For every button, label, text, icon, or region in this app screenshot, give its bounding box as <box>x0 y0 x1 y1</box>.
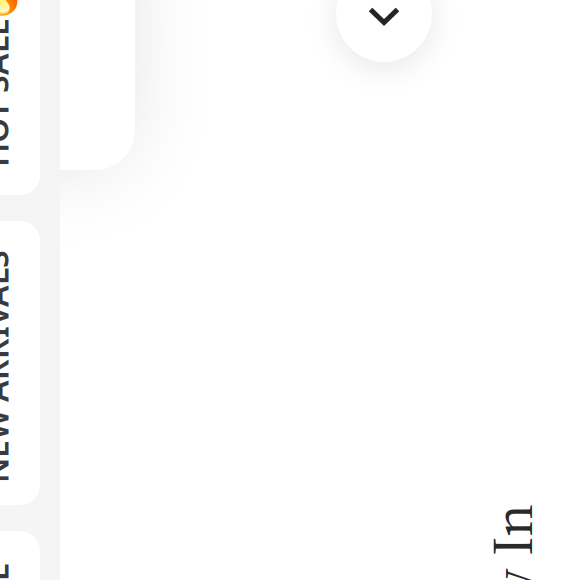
staticText: HOT SALE <box>0 71 70 114</box>
button[interactable] <box>0 0 90 250</box>
staticText: New In <box>426 551 580 580</box>
button[interactable] <box>0 0 90 312</box>
button[interactable] <box>0 0 90 284</box>
staticText: NEW ARRIVALS <box>0 345 112 388</box>
button[interactable]: Scroll down <box>336 0 432 62</box>
staticText: 🔥 <box>0 0 24 17</box>
